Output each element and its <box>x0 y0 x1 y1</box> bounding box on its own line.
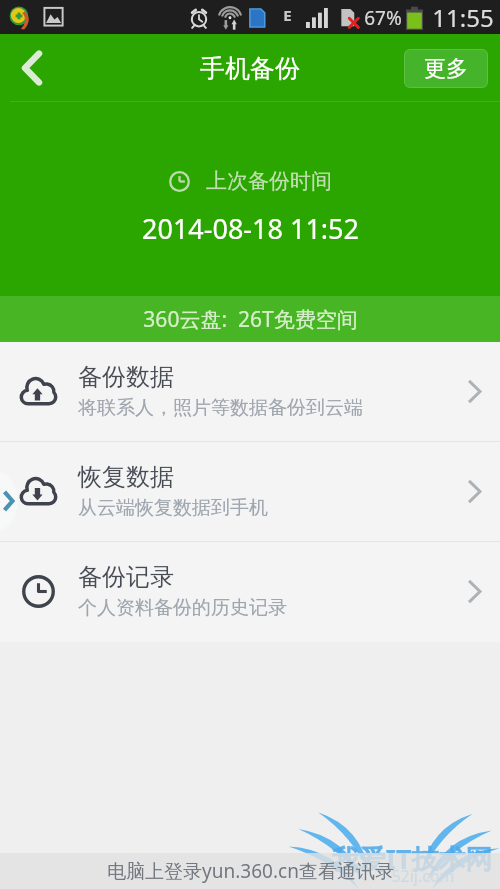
staticText: 电脑上登录yun.360.cn查看通讯录 <box>107 858 394 884</box>
staticText: 52ij.com <box>391 865 455 887</box>
staticText: 11:55 <box>432 1 494 34</box>
staticText: 更多 <box>424 55 468 83</box>
staticText: 将联系人，照片等数据备份到云端 <box>78 396 363 420</box>
staticText: 备份记录 <box>78 562 174 592</box>
button[interactable]: 备份记录 <box>0 542 500 641</box>
staticText: 手机备份 <box>200 53 300 84</box>
staticText: 67% <box>364 5 402 31</box>
button[interactable]: Open drawer <box>0 466 18 536</box>
staticText: 恢复数据 <box>78 462 174 492</box>
staticText: 从云端恢复数据到手机 <box>78 496 268 520</box>
staticText: E <box>283 5 292 25</box>
button[interactable]: 电脑上登录yun.360.cn查看通讯录 <box>0 853 500 889</box>
button[interactable]: 360云盘: 26T免费空间 <box>0 296 500 342</box>
button[interactable]: 更多 <box>404 49 488 88</box>
staticText: 个人资料备份的历史记录 <box>78 596 287 620</box>
staticText: 360云盘: 26T免费空间 <box>143 305 358 334</box>
button[interactable]: 恢复数据 <box>0 442 500 541</box>
staticText: 2014-08-18 11:52 <box>142 210 359 247</box>
staticText: 备份数据 <box>78 362 174 392</box>
button[interactable]: 备份数据 <box>0 342 500 441</box>
button[interactable]: Back <box>0 34 64 102</box>
staticText: 上次备份时间 <box>206 168 332 194</box>
staticText: 我爱IT技术网 <box>331 840 493 877</box>
